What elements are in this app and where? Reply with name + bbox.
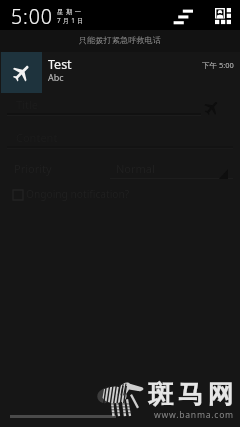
button[interactable]: Contacts [215, 8, 231, 24]
staticText: 斑马网 [148, 378, 238, 410]
staticText: 5:00 [11, 3, 53, 30]
button[interactable]: Mobile data [173, 9, 194, 26]
staticText: 星期一 [57, 8, 84, 16]
staticText: 下午 5:00 [202, 60, 234, 70]
staticText: Test [48, 56, 72, 73]
button[interactable]: Test [0, 52, 240, 93]
staticText: Abc [48, 71, 64, 83]
staticText: www.banma.com [154, 409, 234, 421]
staticText: 只能拨打紧急呼救电话 [79, 35, 161, 45]
staticText: 7月1日 [57, 16, 86, 25]
